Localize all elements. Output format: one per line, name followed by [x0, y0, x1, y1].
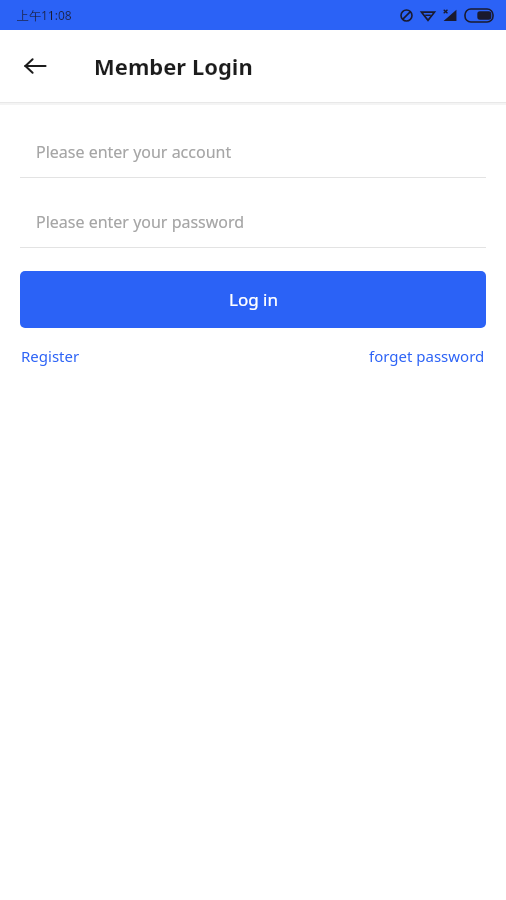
button[interactable]: Register	[20, 342, 81, 370]
staticText: Member Login	[94, 51, 253, 81]
staticText: Register	[21, 346, 80, 366]
staticText: forget password	[369, 346, 485, 366]
button[interactable]: Log in	[20, 271, 486, 328]
button[interactable]: Please enter your account	[20, 126, 486, 178]
staticText: Please enter your password	[36, 211, 245, 233]
staticText: Please enter your account	[36, 141, 232, 163]
button[interactable]: Back	[12, 43, 58, 89]
button[interactable]: Please enter your password	[20, 196, 486, 248]
staticText: 上午11:08	[17, 7, 72, 23]
button[interactable]: forget password	[368, 342, 486, 370]
staticText: Log in	[229, 288, 278, 311]
